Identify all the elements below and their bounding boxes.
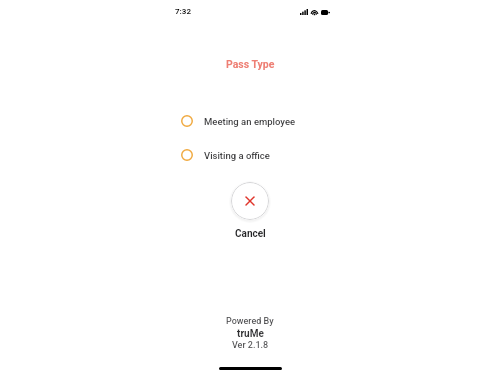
other: Cellular signal [300, 9, 308, 15]
staticText: truMe [237, 328, 264, 340]
staticText: Pass Type [226, 58, 275, 70]
staticText: Ver 2.1.8 [232, 340, 269, 351]
staticText: Meeting an employee [204, 116, 296, 127]
staticText: Cancel [235, 228, 266, 240]
staticText: 7:32 [175, 7, 192, 16]
other: Battery [321, 10, 329, 15]
button[interactable]: Cancel [235, 228, 266, 240]
button[interactable]: Cancel [231, 182, 269, 220]
other: Wi-Fi [311, 9, 318, 15]
staticText: Visiting a office [204, 150, 270, 161]
button[interactable]: Visiting a office [181, 144, 270, 166]
button[interactable]: Meeting an employee [181, 110, 296, 132]
staticText: Powered By [226, 316, 274, 327]
